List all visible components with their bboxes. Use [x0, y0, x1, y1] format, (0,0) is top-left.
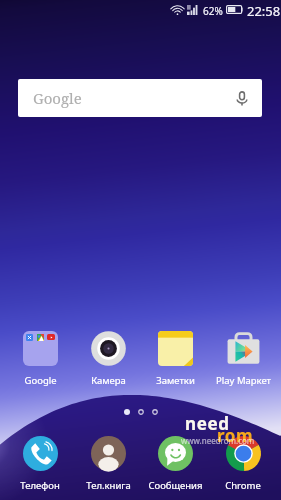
staticText: Камера	[91, 374, 126, 387]
staticText: Chrome	[225, 479, 261, 492]
button[interactable]: Сообщения	[142, 436, 208, 492]
button[interactable]	[152, 409, 158, 415]
button[interactable]	[138, 409, 144, 415]
staticText: Телефон	[20, 479, 60, 492]
button[interactable]: Play Маркет	[210, 331, 276, 387]
button[interactable]: Камера	[75, 331, 141, 387]
staticText: Тел.книга	[86, 479, 131, 492]
button[interactable]	[124, 409, 130, 415]
button[interactable]: Заметки	[142, 331, 208, 387]
button[interactable]: Chrome	[210, 436, 276, 492]
staticText: rom	[217, 424, 254, 447]
button[interactable]: Телефон	[7, 436, 73, 492]
staticText: Google	[24, 374, 57, 387]
button[interactable]: Google	[7, 331, 73, 387]
staticText: Сообщения	[148, 479, 203, 492]
staticText: 62%	[203, 4, 223, 18]
staticText: need	[185, 412, 230, 435]
staticText: Play Маркет	[216, 374, 271, 387]
other: Voice search	[236, 91, 248, 106]
button[interactable]: Тел.книга	[75, 436, 141, 492]
staticText: Google	[33, 88, 82, 108]
staticText: 22:58	[247, 2, 281, 20]
staticText: www.needrom.com	[181, 435, 255, 446]
button[interactable]: Google	[18, 79, 262, 117]
staticText: Заметки	[156, 374, 195, 387]
